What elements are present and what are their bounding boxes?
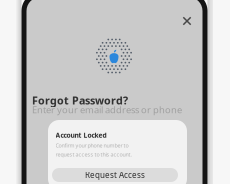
button[interactable]: Close bbox=[177, 11, 196, 30]
button[interactable]: Request Access bbox=[52, 168, 178, 182]
staticText: Confirm your phone number to bbox=[55, 142, 128, 149]
staticText: Forgot Password? bbox=[32, 93, 128, 107]
staticText: request access to this account. bbox=[55, 151, 131, 158]
staticText: Account Locked bbox=[55, 130, 106, 140]
staticText: Enter your email address or phone bbox=[32, 103, 182, 116]
staticText: Request Access bbox=[85, 170, 145, 180]
